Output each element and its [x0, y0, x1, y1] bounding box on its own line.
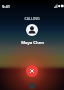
- staticText: Maya Chen: [21, 40, 44, 46]
- button[interactable]: Hide call: [29, 83, 35, 89]
- staticText: 9:41: [2, 4, 10, 9]
- staticText: CALLING: [24, 16, 40, 21]
- button[interactable]: End call: [26, 65, 38, 77]
